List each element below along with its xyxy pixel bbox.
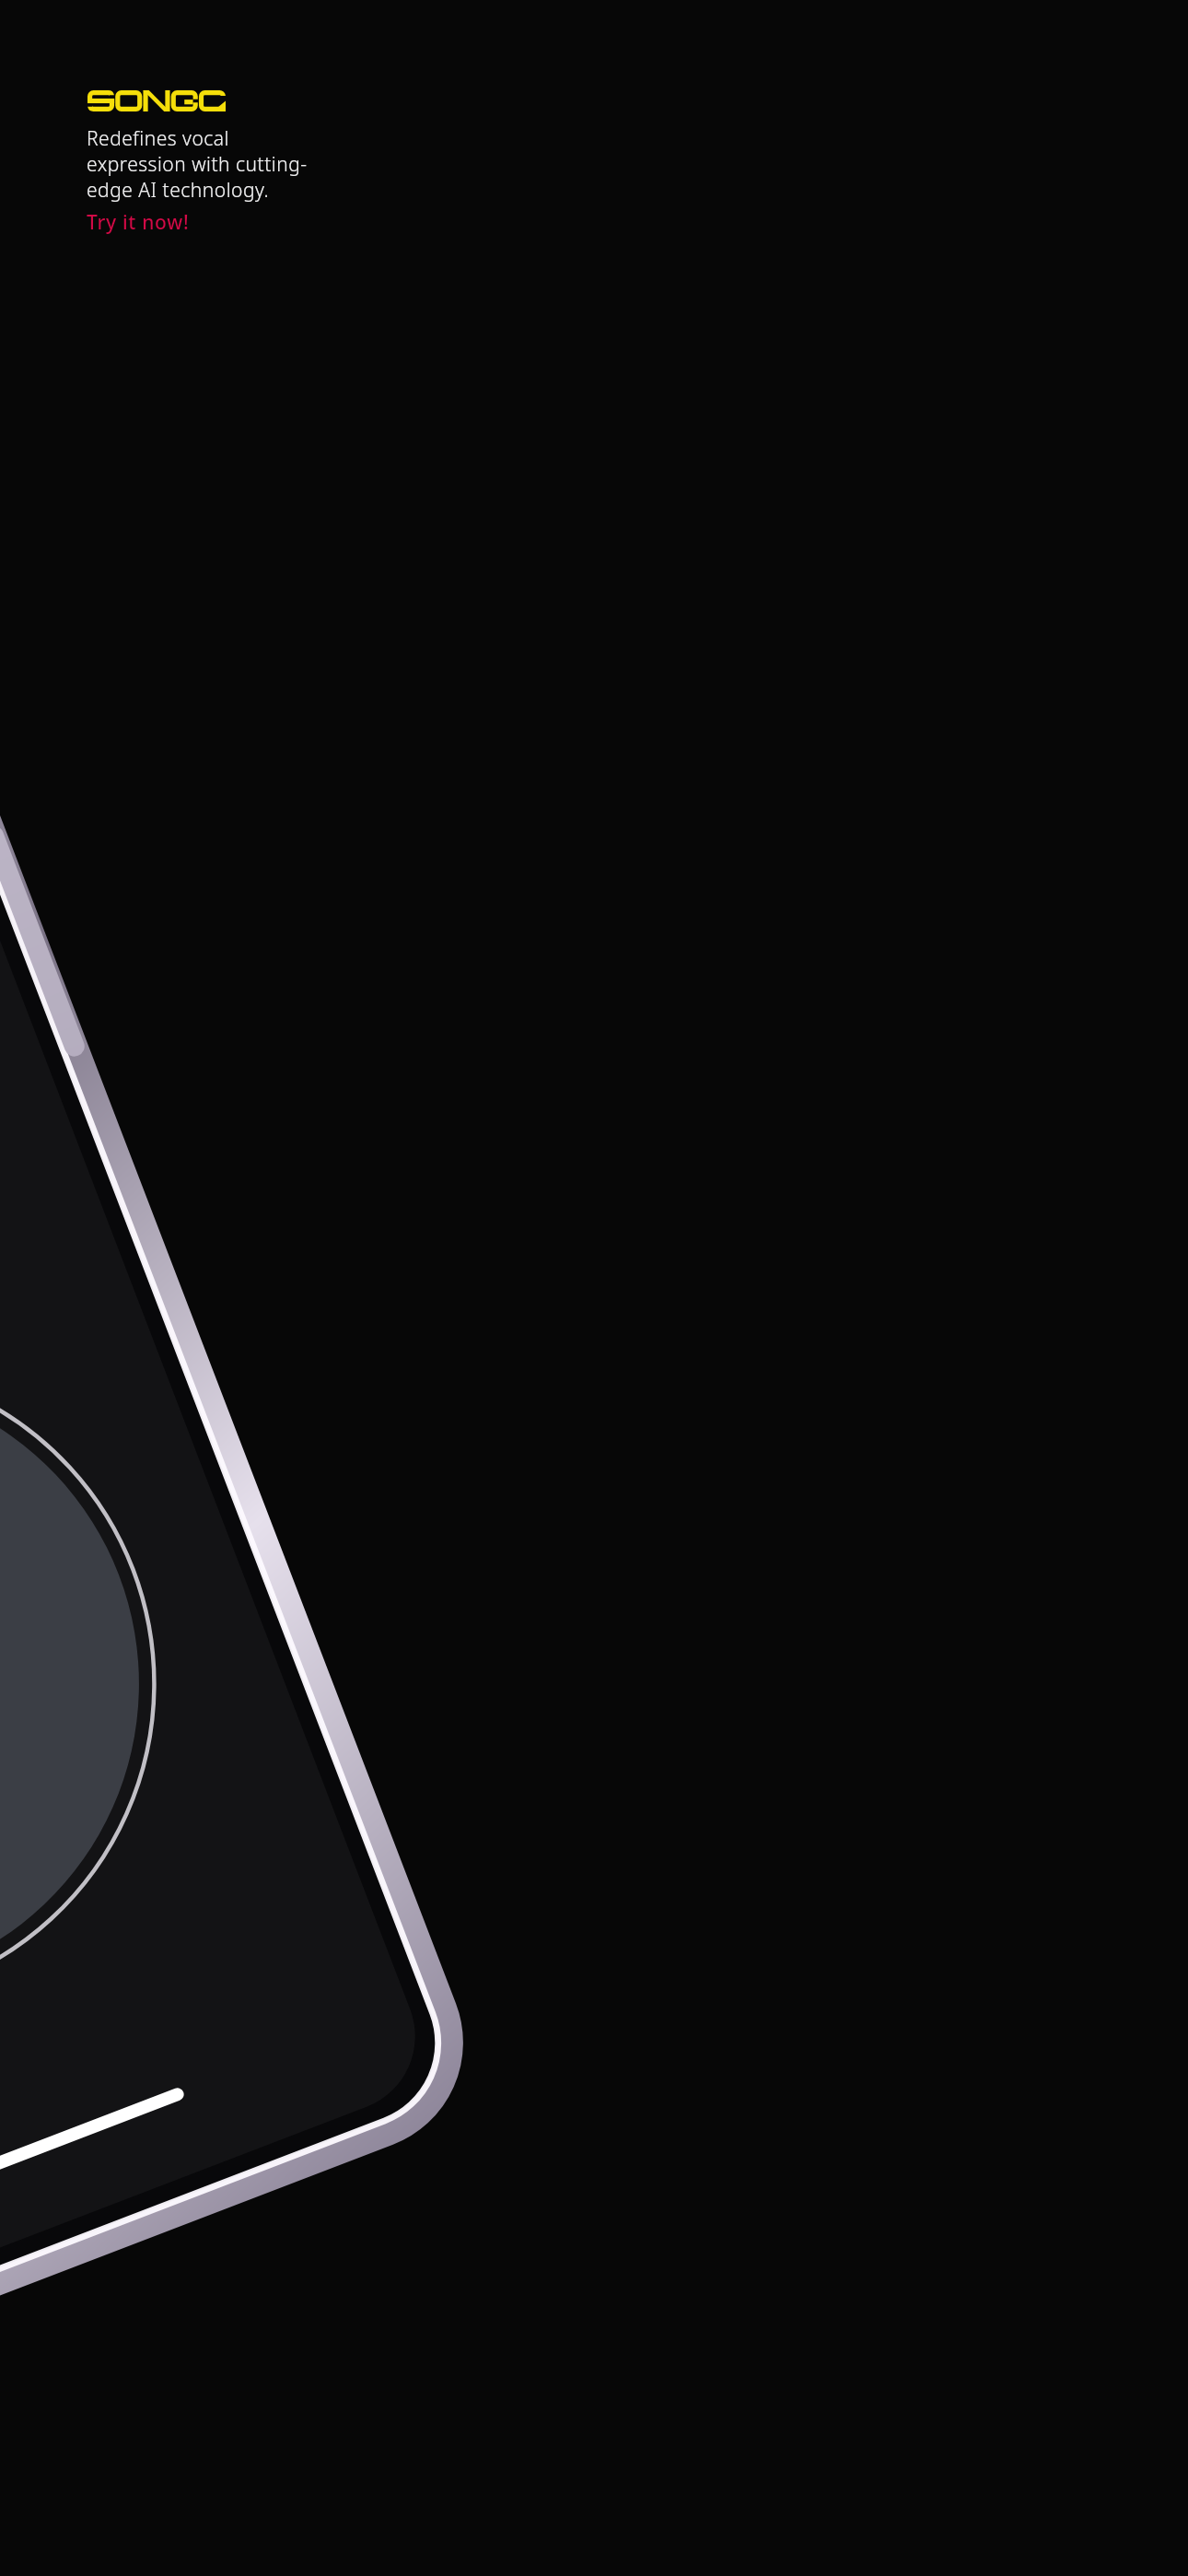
button[interactable]: SONGO	[87, 90, 226, 111]
staticText: Redefines vocal expression with cutting‑…	[87, 125, 308, 203]
staticText: Try it now!	[87, 209, 190, 236]
button[interactable]: Try it now!	[87, 209, 190, 236]
other: App preview on phone	[0, 0, 1188, 2576]
